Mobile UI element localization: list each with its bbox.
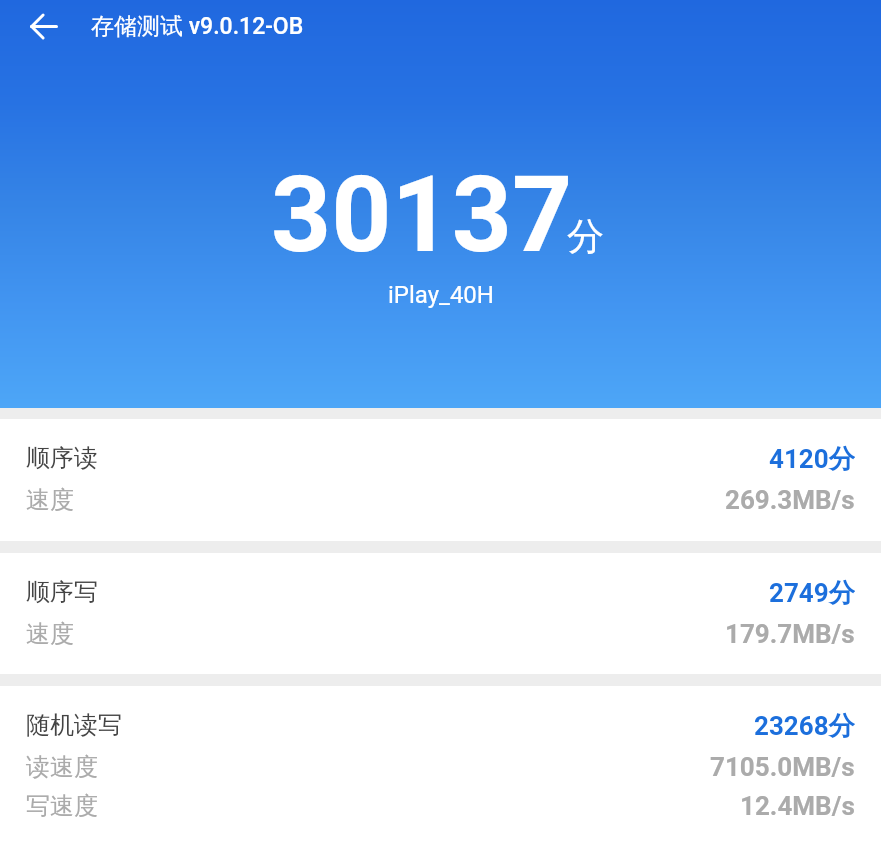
staticText: 4120分 xyxy=(769,443,855,473)
staticText: 179.7MB/s xyxy=(725,619,855,649)
button[interactable]: Back xyxy=(19,2,67,50)
staticText: 12.4MB/s xyxy=(740,791,855,821)
staticText: 23268分 xyxy=(754,710,855,740)
staticText: 写速度 xyxy=(26,791,98,821)
staticText: 顺序写 xyxy=(26,577,98,607)
button[interactable]: 顺序读 xyxy=(0,419,881,541)
staticText: 30137 xyxy=(271,154,573,277)
staticText: 读速度 xyxy=(26,752,98,782)
button[interactable]: 随机读写 xyxy=(0,686,881,851)
staticText: 分 xyxy=(567,213,604,260)
staticText: 存储测试 v9.0.12-OB xyxy=(91,12,304,41)
staticText: 2749分 xyxy=(769,577,855,607)
staticText: 随机读写 xyxy=(26,710,122,740)
staticText: 速度 xyxy=(26,485,74,515)
staticText: 7105.0MB/s xyxy=(710,752,855,782)
staticText: iPlay_40H xyxy=(388,281,494,309)
staticText: 顺序读 xyxy=(26,443,98,473)
button[interactable]: 顺序写 xyxy=(0,553,881,674)
staticText: 269.3MB/s xyxy=(725,485,855,515)
staticText: 速度 xyxy=(26,619,74,649)
